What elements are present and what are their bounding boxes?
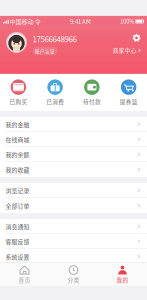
staticText: 系统设置	[5, 252, 29, 261]
button[interactable]: 已购买	[0, 79, 37, 106]
button[interactable]: 首页	[0, 265, 49, 284]
button[interactable]: 系统设置	[0, 249, 147, 264]
button[interactable]: 待付款	[73, 79, 110, 106]
staticText: 我的金融	[5, 120, 29, 129]
button[interactable]: 在线商城	[0, 132, 147, 147]
staticText: 分类	[67, 276, 79, 284]
staticText: 9:41 AM	[70, 17, 91, 26]
staticText: 已消费	[46, 97, 64, 106]
button[interactable]: 我的收藏	[0, 162, 147, 177]
staticText: 100%	[120, 17, 135, 25]
staticText: 账户认证	[35, 48, 55, 54]
button[interactable]: 浏览记录	[0, 183, 147, 198]
staticText: 商家中心	[113, 46, 137, 54]
staticText: 待付款	[83, 97, 101, 106]
button[interactable]: 商家中心	[113, 46, 141, 54]
staticText: 消息通知	[5, 222, 29, 231]
staticText: 浏览记录	[5, 186, 29, 195]
staticText: 客服反馈	[5, 237, 29, 246]
staticText: 全部订单	[5, 201, 29, 210]
staticText: 我的收藏	[5, 165, 29, 174]
button[interactable]: 全部订单	[0, 198, 147, 213]
staticText: 我的	[116, 276, 128, 284]
staticText: 令	[34, 17, 41, 26]
staticText: 我的余额	[5, 150, 29, 159]
button[interactable]: 提券篮	[110, 79, 147, 106]
button[interactable]: 消息通知	[0, 219, 147, 234]
button[interactable]: 分类	[49, 265, 98, 284]
button[interactable]: 设置	[132, 33, 141, 42]
button[interactable]: 我的金融	[0, 117, 147, 132]
button[interactable]: 我的	[98, 265, 147, 284]
button[interactable]: 客服反馈	[0, 234, 147, 249]
staticText: 17566648966	[32, 33, 76, 44]
button[interactable]: 我的余额	[0, 147, 147, 162]
staticText: 提券篮	[120, 97, 138, 106]
staticText: 首页	[18, 276, 30, 284]
staticText: 已购买	[9, 97, 27, 106]
staticText: 中国移动	[9, 17, 34, 26]
staticText: 在线商城	[5, 135, 29, 144]
button[interactable]: 已消费	[37, 79, 74, 106]
